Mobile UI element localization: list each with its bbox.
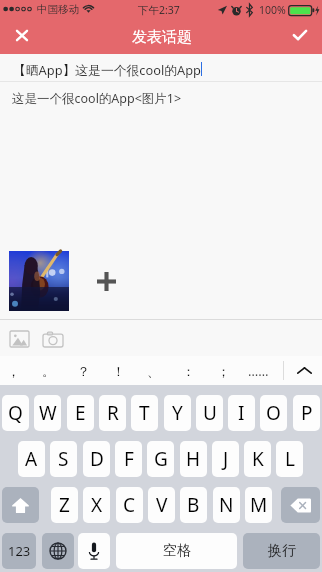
staticText: H xyxy=(186,446,201,472)
button[interactable]: W xyxy=(34,395,61,431)
staticText: 这是一个很cool的App<图片1> xyxy=(12,90,182,107)
staticText: ！ xyxy=(112,363,125,379)
button[interactable]: ： xyxy=(171,356,206,385)
staticText: 空格 xyxy=(163,542,191,560)
button[interactable]: 。 xyxy=(31,356,66,385)
staticText: I xyxy=(238,400,245,426)
button[interactable]: Photo xyxy=(9,251,69,311)
button[interactable]: A xyxy=(18,441,45,477)
button[interactable]: Close xyxy=(9,22,35,48)
staticText: F xyxy=(124,446,134,472)
button[interactable]: I xyxy=(228,395,255,431)
staticText: P xyxy=(301,400,313,426)
staticText: O xyxy=(266,400,281,426)
button[interactable]: E xyxy=(67,395,94,431)
staticText: ： xyxy=(182,363,195,379)
button[interactable]: Insert image xyxy=(5,325,33,353)
staticText: A xyxy=(25,446,38,472)
button[interactable]: V xyxy=(148,487,175,523)
button[interactable]: N xyxy=(213,487,240,523)
button[interactable]: Switch keyboard xyxy=(42,533,74,569)
button[interactable]: Dictation xyxy=(78,533,110,569)
button[interactable]: 空格 xyxy=(116,533,237,569)
staticText: 下午2:37 xyxy=(138,3,180,17)
staticText: Z xyxy=(59,492,70,518)
button[interactable]: X xyxy=(83,487,110,523)
button[interactable]: S xyxy=(50,441,77,477)
staticText: 、 xyxy=(147,363,160,379)
button[interactable]: ！ xyxy=(101,356,136,385)
staticText: …… xyxy=(248,362,269,380)
staticText: ？ xyxy=(77,363,90,379)
button[interactable]: Send xyxy=(287,22,313,48)
staticText: B xyxy=(187,492,200,518)
button[interactable]: Add photo xyxy=(93,268,120,295)
button[interactable]: P xyxy=(293,395,320,431)
button[interactable]: Z xyxy=(51,487,78,523)
button[interactable]: Backspace xyxy=(281,487,320,523)
staticText: ， xyxy=(7,363,20,379)
staticText: Q xyxy=(8,400,23,426)
staticText: E xyxy=(75,400,86,426)
staticText: C xyxy=(123,492,136,518)
staticText: 100% xyxy=(259,3,286,17)
staticText: M xyxy=(250,492,268,518)
button[interactable]: O xyxy=(260,395,287,431)
staticText: G xyxy=(154,446,168,472)
button[interactable]: 123 xyxy=(2,533,36,569)
staticText: N xyxy=(219,492,234,518)
button[interactable]: L xyxy=(276,441,303,477)
button[interactable]: Hide keyboard xyxy=(288,356,320,385)
button[interactable]: D xyxy=(83,441,110,477)
staticText: W xyxy=(39,400,57,426)
button[interactable]: G xyxy=(147,441,174,477)
button[interactable]: F xyxy=(115,441,142,477)
staticText: 换行 xyxy=(268,542,296,560)
button[interactable]: K xyxy=(244,441,271,477)
button[interactable]: ， xyxy=(0,356,31,385)
staticText: T xyxy=(139,400,150,426)
staticText: D xyxy=(90,446,104,472)
staticText: S xyxy=(58,446,69,472)
staticText: X xyxy=(91,492,103,518)
staticText: 发表话题 xyxy=(132,28,192,47)
button[interactable]: C xyxy=(116,487,143,523)
button[interactable]: Take photo xyxy=(39,325,67,353)
staticText: U xyxy=(203,400,217,426)
button[interactable]: ； xyxy=(206,356,241,385)
button[interactable]: U xyxy=(196,395,223,431)
button[interactable]: Y xyxy=(164,395,191,431)
button[interactable]: Shift xyxy=(2,487,39,523)
staticText: R xyxy=(107,400,119,426)
button[interactable]: …… xyxy=(241,356,276,385)
button[interactable]: J xyxy=(212,441,239,477)
button[interactable]: H xyxy=(180,441,207,477)
staticText: 123 xyxy=(8,542,31,560)
button[interactable]: B xyxy=(180,487,207,523)
button[interactable]: R xyxy=(99,395,126,431)
button[interactable]: Q xyxy=(2,395,29,431)
staticText: J xyxy=(223,446,229,472)
button[interactable]: 、 xyxy=(136,356,171,385)
staticText: ； xyxy=(217,363,230,379)
staticText: L xyxy=(285,446,295,472)
button[interactable]: T xyxy=(131,395,158,431)
staticText: V xyxy=(156,492,168,518)
button[interactable]: M xyxy=(245,487,272,523)
staticText: 中国移动 xyxy=(37,3,79,16)
button[interactable]: 换行 xyxy=(243,533,320,569)
staticText: K xyxy=(252,446,264,472)
button[interactable]: ？ xyxy=(66,356,101,385)
staticText: 【晒App】这是一个很cool的App xyxy=(13,61,201,78)
staticText: 。 xyxy=(42,363,55,379)
staticText: Y xyxy=(172,400,183,426)
